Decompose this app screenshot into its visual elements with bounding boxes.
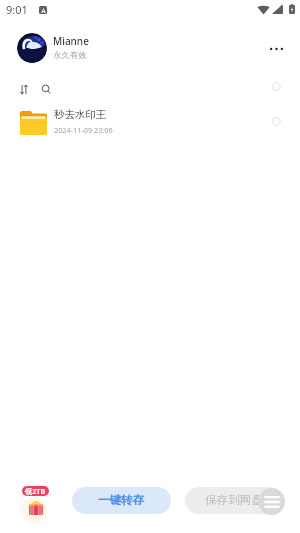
staticText: 秒去水印王 [54, 108, 106, 121]
button[interactable]: Get 2TB free space [16, 483, 56, 519]
button[interactable]: Menu [258, 488, 285, 515]
button[interactable]: More options [262, 35, 290, 63]
button[interactable]: 秒去水印王 [0, 103, 300, 141]
staticText: 领2TB [25, 486, 46, 496]
staticText: 9:01 [6, 2, 28, 17]
button[interactable]: 保存到网盘 [185, 487, 282, 514]
button[interactable]: Profile picture [17, 33, 47, 63]
button[interactable]: Select item [266, 111, 286, 131]
button[interactable]: Select all [266, 76, 286, 96]
staticText: Mianne [53, 34, 89, 48]
staticText: 保存到网盘 [205, 493, 263, 508]
staticText: 2024-11-09 23:06 [54, 125, 113, 135]
staticText: 一键转存 [98, 493, 145, 508]
button[interactable]: Search [36, 79, 56, 99]
staticText: 永久有效 [53, 50, 87, 61]
button[interactable]: Sort [14, 79, 34, 99]
button[interactable]: 一键转存 [72, 487, 171, 514]
